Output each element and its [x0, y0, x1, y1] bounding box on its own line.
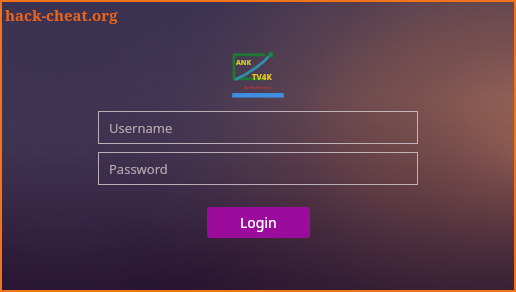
staticText: Login [240, 213, 277, 232]
button[interactable]: Username [98, 111, 418, 144]
staticText: Username [109, 119, 173, 137]
button[interactable]: Password [98, 152, 418, 185]
staticText: Password [109, 160, 168, 178]
staticText: No Buffering ! [228, 85, 288, 90]
staticText: hack-cheat.org [5, 5, 118, 25]
staticText: TV4K [252, 71, 272, 82]
staticText: ANK [236, 58, 252, 68]
button[interactable]: Login [207, 207, 310, 238]
